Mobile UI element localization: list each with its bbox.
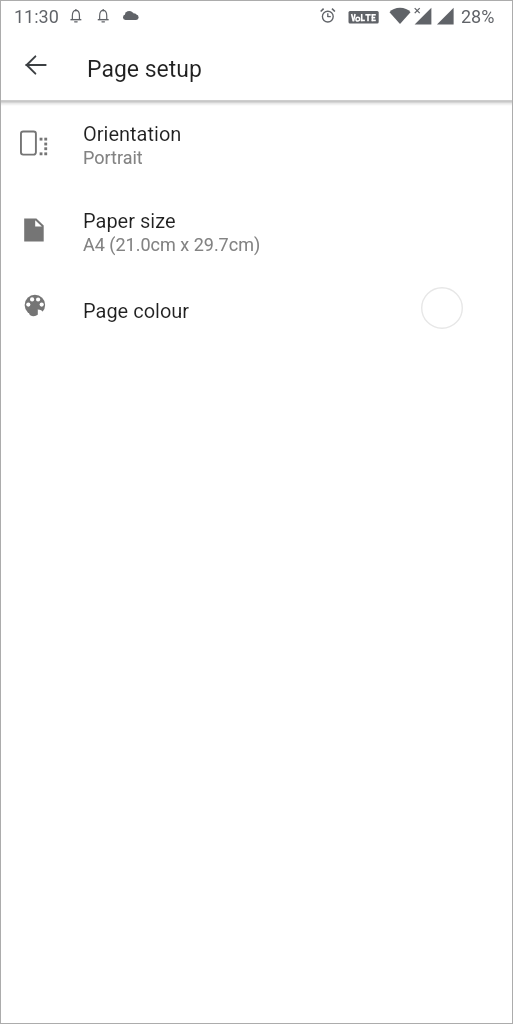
button[interactable]: Orientation [0,106,513,189]
button[interactable]: Choose page colour [419,285,465,331]
staticText: 28% [461,6,495,27]
button[interactable]: Back [12,41,60,89]
staticText: A4 (21.0cm x 29.7cm) [83,234,261,255]
staticText: 11:30 [14,6,59,27]
staticText: Page setup [87,56,202,83]
button[interactable]: Page colour [0,277,513,343]
staticText: Portrait [83,147,143,168]
staticText: Paper size [83,209,176,232]
staticText: Orientation [83,122,182,145]
staticText: Page colour [83,299,190,322]
button[interactable]: Paper size [0,189,513,277]
